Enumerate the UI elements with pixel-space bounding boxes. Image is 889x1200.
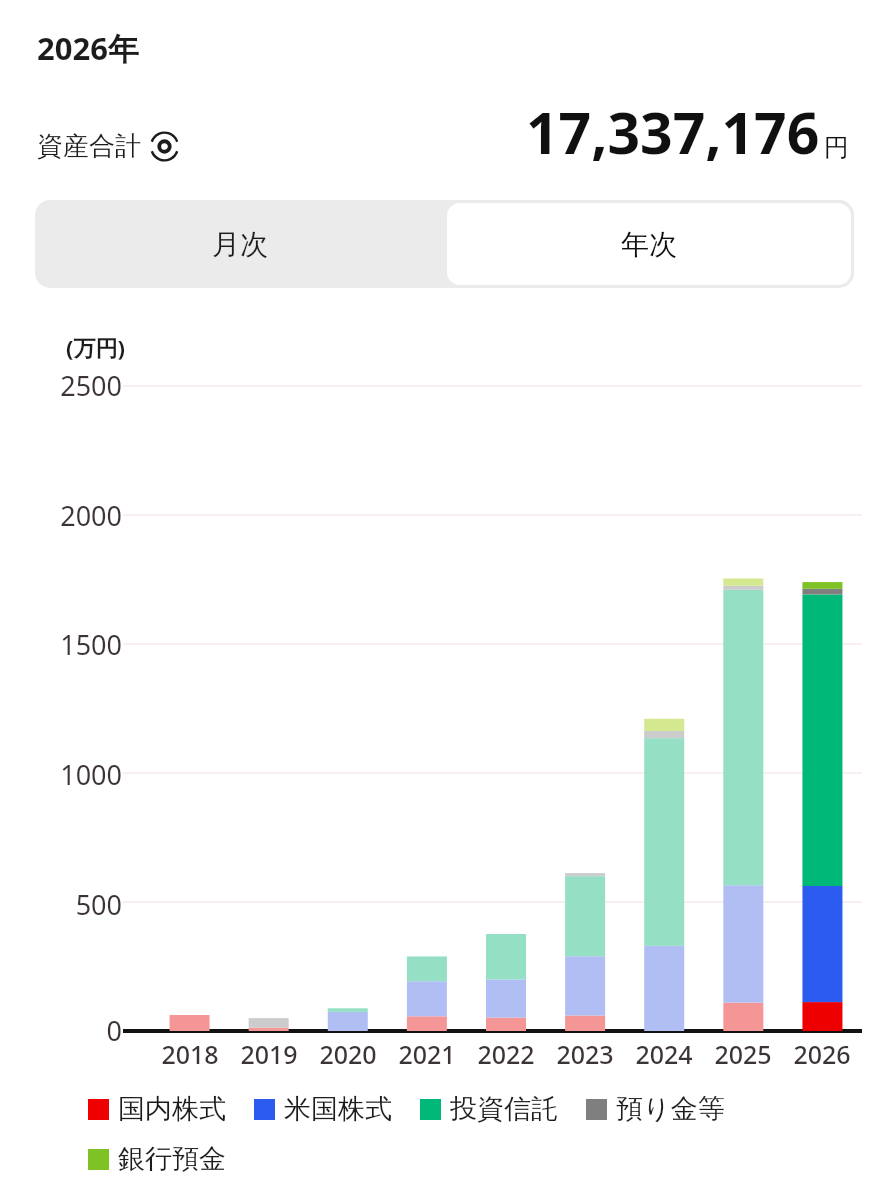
other: 表示切替: [151, 136, 178, 157]
staticText: 1500: [60, 626, 122, 663]
staticText: 0: [106, 1012, 122, 1049]
staticText: 月次: [212, 227, 268, 262]
staticText: 2021: [398, 1037, 456, 1071]
staticText: 500: [75, 886, 122, 923]
staticText: 銀行預金: [118, 1142, 226, 1176]
staticText: 2018: [161, 1037, 219, 1071]
staticText: 米国株式: [284, 1092, 392, 1126]
staticText: 2026: [793, 1037, 851, 1071]
staticText: 17,337,176: [526, 93, 820, 171]
staticText: (万円): [66, 332, 125, 362]
staticText: 円: [824, 132, 849, 163]
staticText: 2020: [319, 1037, 377, 1071]
staticText: 2500: [60, 367, 122, 404]
staticText: 国内株式: [118, 1092, 226, 1126]
staticText: 1000: [60, 756, 122, 793]
button[interactable]: 米国株式: [254, 1092, 392, 1126]
staticText: 投資信託: [450, 1092, 558, 1126]
button[interactable]: 月次: [35, 200, 444, 288]
staticText: 年次: [621, 227, 677, 262]
button[interactable]: 年次: [447, 203, 851, 285]
staticText: 2024: [635, 1037, 693, 1071]
button[interactable]: 投資信託: [420, 1092, 558, 1126]
staticText: 2000: [60, 497, 122, 534]
staticText: 2026年: [37, 27, 139, 69]
button[interactable]: 資産合計の表示を切り替える: [37, 130, 178, 163]
button[interactable]: 銀行預金: [88, 1142, 226, 1176]
staticText: 2025: [714, 1037, 772, 1071]
staticText: 2023: [556, 1037, 614, 1071]
staticText: 2019: [240, 1037, 298, 1071]
button[interactable]: 預り金等: [586, 1092, 725, 1126]
staticText: 資産合計: [37, 130, 141, 163]
staticText: 2022: [477, 1037, 535, 1071]
staticText: 預り金等: [616, 1092, 725, 1126]
button[interactable]: 国内株式: [88, 1092, 226, 1126]
